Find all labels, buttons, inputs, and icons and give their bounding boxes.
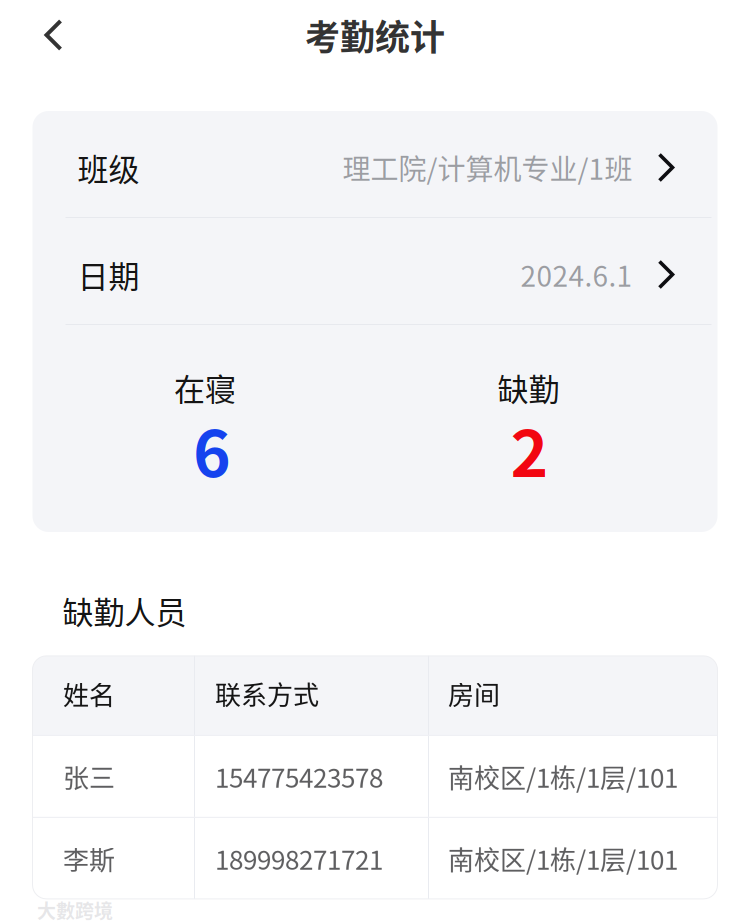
staticText: 2 (510, 403, 548, 495)
staticText: 姓名 (63, 675, 115, 712)
staticText: 缺勤 (497, 365, 559, 410)
button[interactable]: 日期 (32, 218, 717, 324)
staticText: 张三 (63, 758, 115, 795)
staticText: 李斯 (63, 840, 115, 877)
staticText: 2024.6.1 (520, 254, 632, 295)
staticText: 理工院/计算机专业/1班 (342, 147, 632, 188)
staticText: 联系方式 (215, 675, 319, 712)
staticText: 154775423578 (215, 758, 383, 795)
staticText: 缺勤人员 (62, 588, 186, 633)
staticText: 日期 (77, 252, 139, 297)
staticText: 班级 (77, 145, 139, 190)
staticText: 6 (193, 403, 231, 495)
staticText: 房间 (448, 675, 500, 712)
staticText: 南校区/1栋/1层/101 (448, 840, 678, 877)
staticText: 考勤统计 (305, 10, 445, 60)
staticText: 189998271721 (215, 840, 383, 877)
button[interactable]: Back (0, 4, 90, 65)
staticText: 南校区/1栋/1层/101 (448, 758, 678, 795)
staticText: 在寝 (174, 365, 236, 410)
staticText: 大數跨境 (37, 896, 113, 921)
button[interactable]: 班级 (32, 111, 717, 217)
